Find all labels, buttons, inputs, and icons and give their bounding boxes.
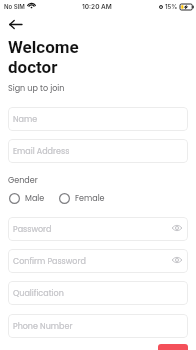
staticText: Male xyxy=(25,193,45,204)
button[interactable]: Male xyxy=(9,191,45,205)
button[interactable]: Female xyxy=(59,191,105,205)
staticText: 15% xyxy=(165,3,178,10)
button[interactable]: Show password xyxy=(170,221,184,235)
staticText: Gender xyxy=(8,175,38,186)
staticText: Female xyxy=(75,193,105,204)
button[interactable]: Back xyxy=(3,15,27,34)
button[interactable]: Sign Up xyxy=(158,344,188,350)
button[interactable]: Phone Number xyxy=(8,314,188,338)
button[interactable]: Qualification xyxy=(8,281,188,305)
staticText: Name xyxy=(13,114,38,125)
button[interactable]: Name xyxy=(8,107,188,131)
staticText: Email Address xyxy=(13,146,70,157)
staticText: Sign up to join xyxy=(8,83,65,94)
button[interactable]: Email Address xyxy=(8,139,188,163)
staticText: Qualification xyxy=(13,288,64,299)
button[interactable]: Confirm Password xyxy=(8,249,188,273)
staticText: No SIM xyxy=(4,3,25,10)
staticText: Password xyxy=(13,224,52,235)
staticText: 10:20 AM xyxy=(82,3,112,11)
button[interactable]: Password xyxy=(8,217,188,241)
button[interactable]: Show password xyxy=(170,253,184,267)
staticText: Confirm Password xyxy=(13,256,86,267)
staticText: Phone Number xyxy=(13,321,73,332)
staticText: Welcome xyxy=(8,37,79,57)
staticText: doctor xyxy=(8,57,58,77)
